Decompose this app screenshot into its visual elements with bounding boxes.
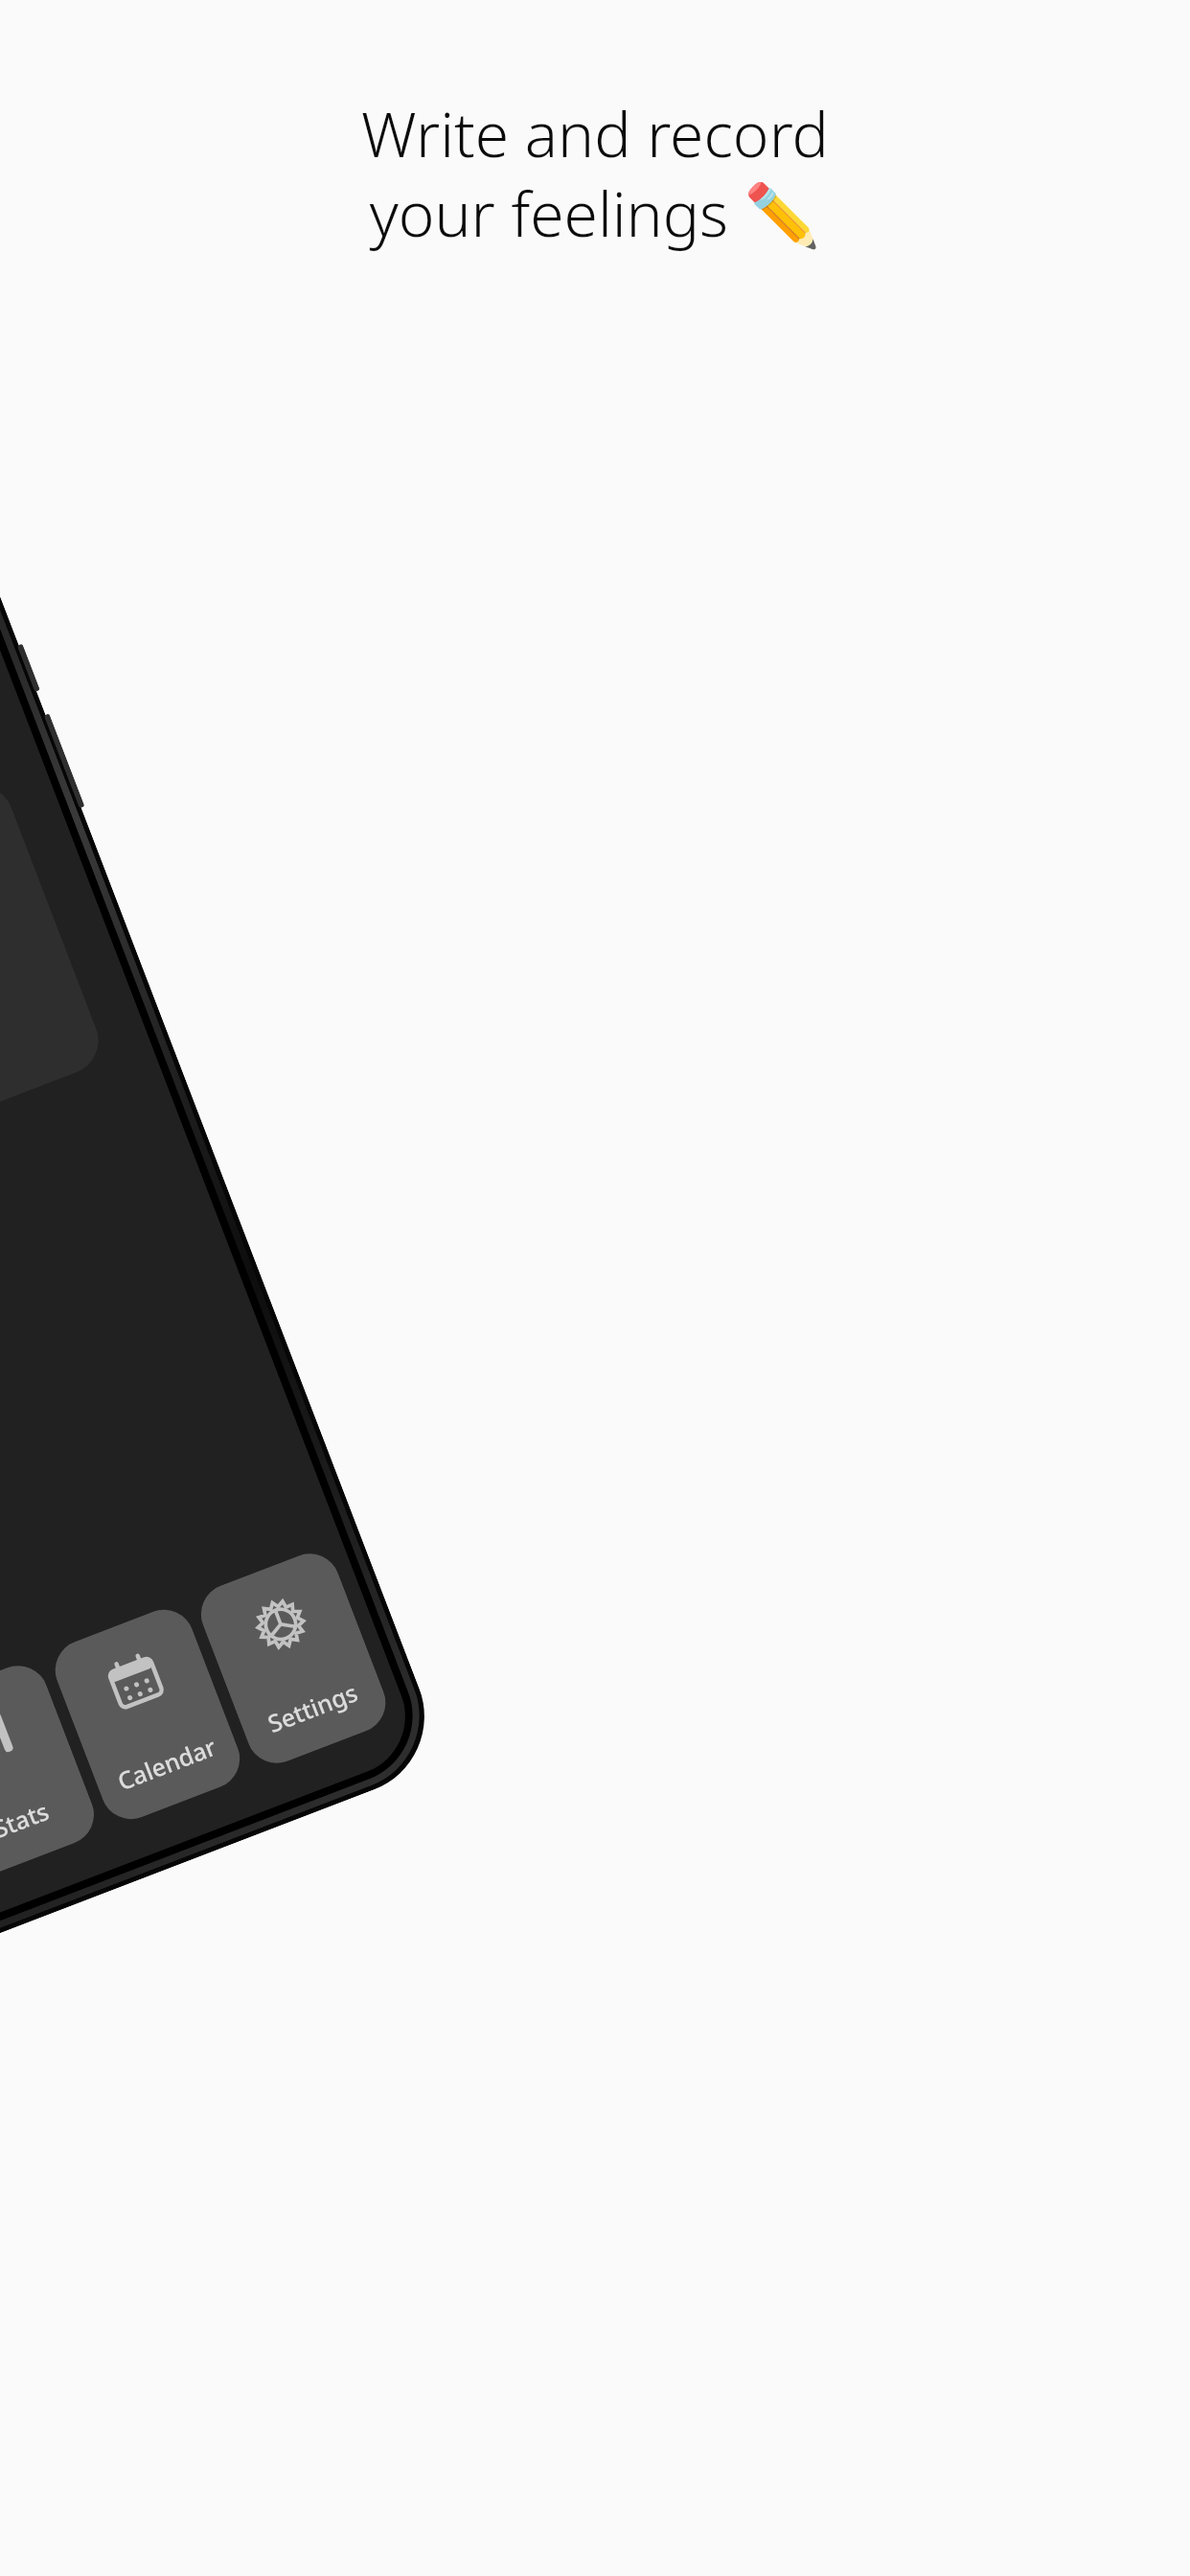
button[interactable]: Settings: [192, 1545, 394, 1772]
staticText: Settings: [263, 1675, 362, 1740]
staticText: Write and record your feelings ✏️: [361, 92, 829, 255]
staticText: Stats: [0, 1794, 54, 1845]
staticText: Calendar: [113, 1730, 221, 1797]
button[interactable]: 😄: [0, 776, 108, 1260]
button[interactable]: Stats: [0, 1657, 103, 1884]
button[interactable]: Calendar: [46, 1601, 249, 1828]
